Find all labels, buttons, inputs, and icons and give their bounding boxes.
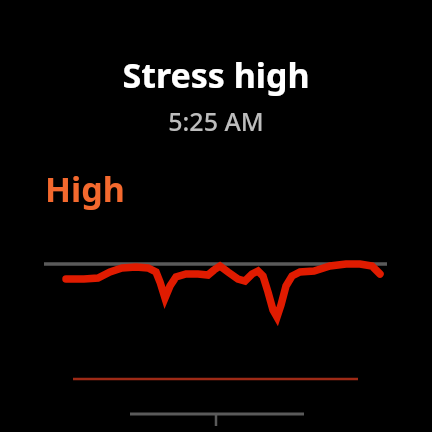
- staticText: Stress high: [0, 52, 432, 98]
- button[interactable]: Stress level chart: [0, 0, 432, 432]
- staticText: High: [45, 166, 125, 212]
- button[interactable]: High: [45, 166, 432, 212]
- staticText: 5:25 AM: [0, 104, 432, 138]
